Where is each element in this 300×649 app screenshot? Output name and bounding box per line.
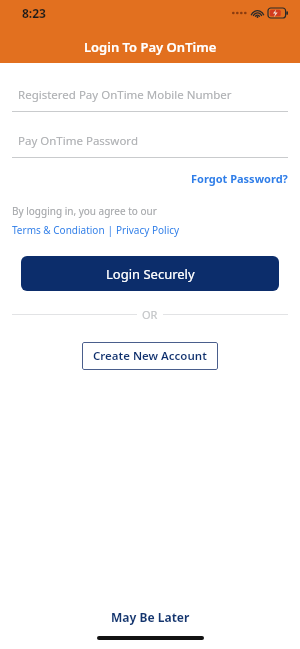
staticText: Login To Pay OnTime — [84, 38, 217, 56]
staticText: Privacy Policy — [116, 223, 180, 237]
staticText: Terms & Condiation — [12, 223, 105, 237]
staticText: Login Securely — [106, 265, 195, 283]
button[interactable]: Forgot Password? — [191, 171, 288, 186]
staticText: By logging in, you agree to our — [12, 204, 157, 218]
staticText: Forgot Password? — [191, 171, 288, 186]
staticText: | — [105, 223, 116, 237]
button[interactable]: Login Securely — [21, 256, 279, 291]
button[interactable]: May Be Later — [99, 605, 202, 629]
button[interactable]: Privacy Policy — [116, 223, 180, 237]
button[interactable]: Terms & Condiation — [12, 223, 105, 237]
staticText: Registered Pay OnTime Mobile Number — [18, 87, 232, 103]
staticText: Pay OnTime Password — [18, 133, 138, 149]
staticText: 8:23 — [22, 5, 46, 21]
staticText: OR — [142, 307, 158, 322]
button[interactable]: Create New Account — [82, 342, 218, 370]
staticText: Create New Account — [93, 348, 207, 364]
staticText: May Be Later — [111, 609, 190, 625]
button[interactable]: Registered Pay OnTime Mobile Number — [12, 87, 288, 112]
button[interactable]: Pay OnTime Password — [12, 133, 288, 158]
